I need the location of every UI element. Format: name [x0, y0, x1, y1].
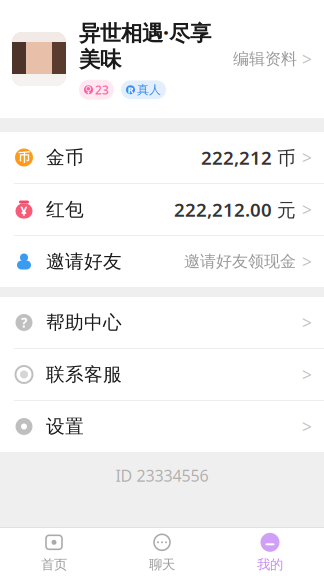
- button[interactable]: 首页: [0, 528, 108, 576]
- button[interactable]: 邀请好友: [0, 236, 324, 287]
- staticText: 异世相遇·尽享美味: [79, 18, 211, 73]
- staticText: 帮助中心: [46, 311, 122, 334]
- staticText: ?: [21, 314, 27, 331]
- button[interactable]: ?: [0, 297, 324, 348]
- staticText: >: [302, 363, 312, 386]
- button[interactable]: 币: [0, 132, 324, 183]
- staticText: 222,212.00 元: [174, 197, 296, 222]
- staticText: 首页: [41, 556, 67, 573]
- staticText: >: [302, 250, 312, 273]
- staticText: >: [302, 311, 312, 334]
- staticText: 邀请好友: [46, 250, 122, 273]
- staticText: >: [302, 198, 312, 221]
- staticText: ¥: [20, 203, 27, 219]
- staticText: >: [302, 146, 312, 169]
- staticText: ID 23334556: [115, 465, 208, 486]
- button[interactable]: 异世相遇·尽享美味: [0, 0, 324, 118]
- staticText: 币: [18, 150, 30, 165]
- staticText: >: [302, 47, 312, 70]
- staticText: 真人: [137, 82, 161, 97]
- staticText: 邀请好友领现金: [184, 252, 296, 271]
- staticText: ♀: [85, 84, 92, 95]
- staticText: 聊天: [149, 556, 175, 573]
- staticText: 金币: [46, 146, 84, 169]
- button[interactable]: 设置: [0, 401, 324, 452]
- staticText: >: [302, 415, 312, 438]
- staticText: 红包: [46, 198, 84, 221]
- staticText: 23: [95, 82, 109, 98]
- button[interactable]: 联系客服: [0, 349, 324, 400]
- staticText: R: [127, 84, 133, 96]
- staticText: 设置: [46, 415, 84, 438]
- staticText: 我的: [257, 556, 283, 573]
- staticText: 编辑资料: [233, 49, 297, 69]
- button[interactable]: 我的: [216, 528, 324, 576]
- button[interactable]: ¥: [0, 184, 324, 235]
- button[interactable]: 聊天: [108, 528, 216, 576]
- staticText: 联系客服: [46, 363, 122, 386]
- staticText: 222,212 币: [201, 145, 296, 170]
